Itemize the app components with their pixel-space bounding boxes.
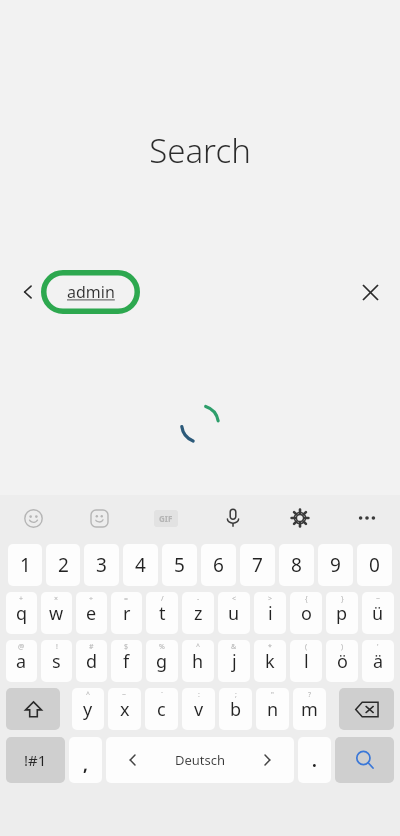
staticText: 5 bbox=[174, 552, 185, 578]
staticText: g bbox=[156, 649, 168, 674]
button[interactable]: , bbox=[69, 737, 102, 783]
staticText: 1 bbox=[20, 552, 31, 578]
button[interactable]: ä bbox=[362, 640, 394, 682]
button[interactable]: More options bbox=[333, 495, 400, 541]
staticText: # bbox=[89, 642, 94, 652]
staticText: ÷ bbox=[89, 594, 94, 604]
button[interactable]: . bbox=[298, 737, 331, 783]
button[interactable]: k bbox=[254, 640, 286, 682]
button[interactable]: a bbox=[6, 640, 37, 682]
button[interactable]: i bbox=[254, 592, 286, 634]
staticText: ( bbox=[305, 642, 308, 652]
staticText: f bbox=[123, 649, 130, 674]
button[interactable]: Deutsch bbox=[106, 737, 294, 783]
button[interactable]: g bbox=[146, 640, 178, 682]
button[interactable]: 9 bbox=[318, 544, 353, 586]
staticText: + bbox=[19, 594, 24, 604]
button[interactable]: v bbox=[182, 688, 215, 730]
button[interactable]: x bbox=[108, 688, 141, 730]
button[interactable]: z bbox=[182, 592, 214, 634]
staticText: ö bbox=[337, 649, 348, 674]
button[interactable]: e bbox=[76, 592, 107, 634]
staticText: ^ bbox=[86, 690, 91, 700]
staticText: ? bbox=[308, 690, 312, 700]
staticText: = bbox=[124, 594, 129, 604]
staticText: ü bbox=[372, 601, 384, 626]
staticText: m bbox=[301, 697, 318, 722]
button[interactable]: GIF bbox=[132, 495, 199, 541]
staticText: y bbox=[83, 697, 93, 722]
staticText: 6 bbox=[213, 552, 224, 578]
staticText: o bbox=[301, 601, 312, 626]
staticText: ! bbox=[56, 642, 58, 652]
staticText: 3 bbox=[96, 552, 107, 578]
button[interactable]: !#1 bbox=[6, 737, 65, 783]
button[interactable]: ö bbox=[326, 640, 358, 682]
staticText: : bbox=[198, 690, 200, 700]
staticText: k bbox=[265, 649, 275, 674]
staticText: @ bbox=[18, 642, 25, 652]
button[interactable]: s bbox=[41, 640, 72, 682]
button[interactable]: Backspace bbox=[339, 688, 394, 730]
button[interactable]: y bbox=[72, 688, 104, 730]
staticText: r bbox=[123, 601, 131, 626]
staticText: u bbox=[228, 601, 240, 626]
button[interactable]: Clear bbox=[352, 274, 388, 310]
staticText: admin bbox=[67, 281, 115, 303]
button[interactable]: 5 bbox=[162, 544, 197, 586]
staticText: ä bbox=[373, 649, 384, 674]
staticText: b bbox=[230, 697, 242, 722]
button[interactable]: q bbox=[6, 592, 37, 634]
button[interactable]: p bbox=[326, 592, 358, 634]
button[interactable]: h bbox=[182, 640, 214, 682]
button[interactable]: 6 bbox=[201, 544, 236, 586]
button[interactable]: ü bbox=[362, 592, 394, 634]
button[interactable]: Shift bbox=[6, 688, 60, 730]
staticText: > bbox=[268, 594, 273, 604]
staticText: % bbox=[159, 642, 165, 652]
button[interactable]: Voice input bbox=[199, 495, 266, 541]
button[interactable]: 3 bbox=[84, 544, 119, 586]
button[interactable]: Search bbox=[335, 737, 394, 783]
staticText: ~ bbox=[376, 594, 381, 604]
staticText: d bbox=[86, 649, 98, 674]
button[interactable]: d bbox=[76, 640, 107, 682]
button[interactable]: 8 bbox=[279, 544, 314, 586]
button[interactable]: l bbox=[290, 640, 322, 682]
button[interactable]: t bbox=[146, 592, 178, 634]
button[interactable]: c bbox=[145, 688, 178, 730]
button[interactable]: o bbox=[290, 592, 322, 634]
button[interactable]: w bbox=[41, 592, 72, 634]
button[interactable]: 7 bbox=[240, 544, 275, 586]
button[interactable]: m bbox=[293, 688, 326, 730]
button[interactable]: 1 bbox=[8, 544, 42, 586]
staticText: { bbox=[305, 594, 308, 604]
button[interactable]: 0 bbox=[357, 544, 392, 586]
staticText: " bbox=[271, 690, 274, 700]
button[interactable]: u bbox=[218, 592, 250, 634]
button[interactable]: 2 bbox=[46, 544, 80, 586]
button[interactable]: j bbox=[218, 640, 250, 682]
staticText: , bbox=[83, 753, 88, 776]
staticText: × bbox=[54, 594, 59, 604]
staticText: p bbox=[336, 601, 348, 626]
staticText: !#1 bbox=[24, 750, 47, 770]
staticText: < bbox=[232, 594, 237, 604]
staticText: Search bbox=[0, 128, 400, 173]
button[interactable]: f bbox=[111, 640, 142, 682]
button[interactable]: admin bbox=[41, 270, 140, 314]
button[interactable]: Back bbox=[14, 278, 42, 306]
staticText: ; bbox=[235, 690, 237, 700]
staticText: - bbox=[197, 594, 200, 604]
staticText: e bbox=[86, 601, 97, 626]
button[interactable]: Stickers bbox=[66, 495, 132, 541]
button[interactable]: b bbox=[219, 688, 252, 730]
button[interactable]: Emoji bbox=[0, 495, 66, 541]
button[interactable]: r bbox=[111, 592, 142, 634]
staticText: v bbox=[194, 697, 204, 722]
button[interactable]: n bbox=[256, 688, 289, 730]
staticText: i bbox=[268, 601, 273, 626]
button[interactable]: 4 bbox=[123, 544, 158, 586]
staticText: q bbox=[16, 601, 28, 626]
button[interactable]: Settings bbox=[266, 495, 333, 541]
